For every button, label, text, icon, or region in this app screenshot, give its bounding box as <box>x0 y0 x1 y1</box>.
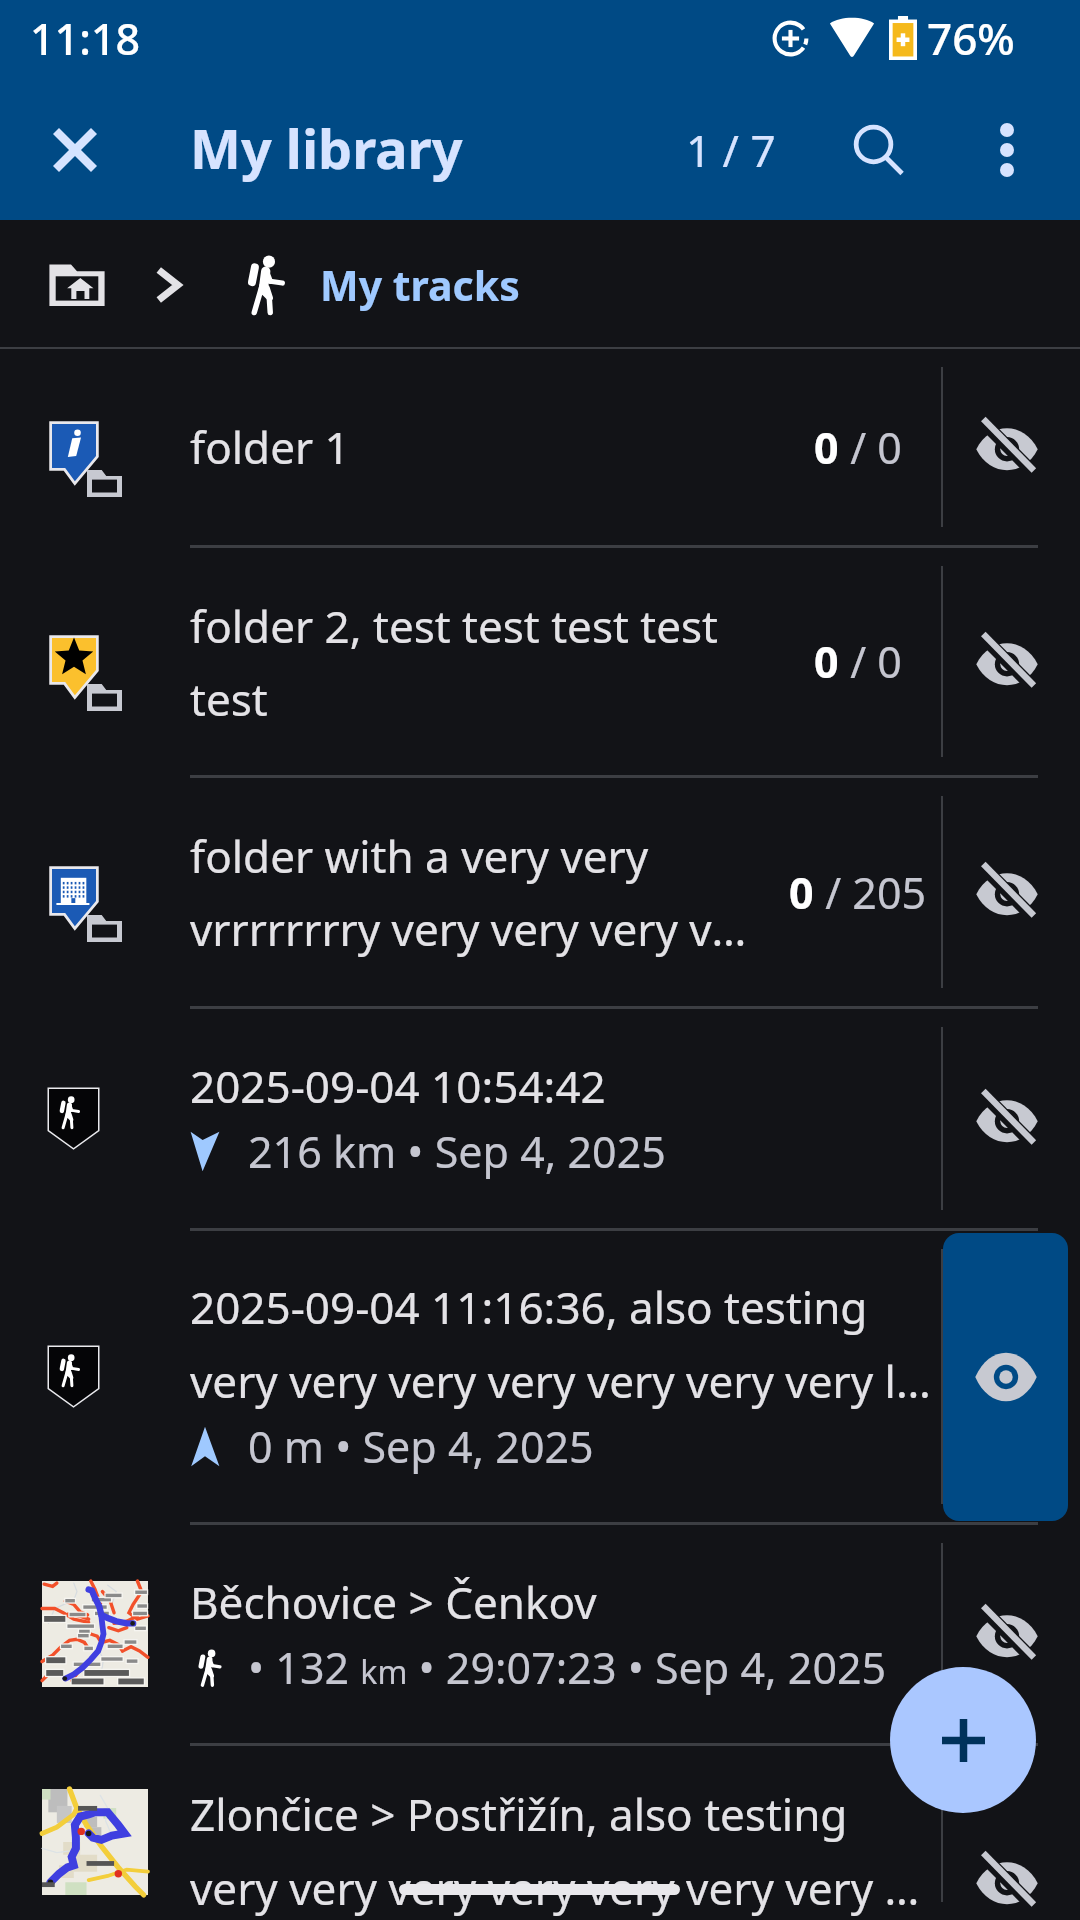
button[interactable]: More options <box>959 102 1055 198</box>
staticText: folder with a very very vrrrrrrrry very … <box>190 826 767 958</box>
staticText: 0 <box>814 418 839 477</box>
button[interactable]: Home folder <box>46 254 108 316</box>
staticText: My tracks <box>320 257 520 313</box>
button[interactable]: folder 2, test test test test test <box>0 548 1080 775</box>
button[interactable]: Show on map <box>943 548 1080 775</box>
staticText: 2025-09-04 10:54:42 <box>190 1056 606 1116</box>
button[interactable]: Show on map <box>943 349 1080 545</box>
staticText: 76% <box>927 8 1015 68</box>
button[interactable]: My tracks <box>236 253 520 317</box>
staticText: 2025-09-04 11:16:36, also testing very v… <box>190 1277 939 1411</box>
button[interactable]: folder 1 <box>0 349 1080 545</box>
button[interactable]: Close <box>27 102 123 198</box>
button[interactable]: Search <box>830 102 926 198</box>
button[interactable]: 2025-09-04 10:54:42 <box>0 1009 1080 1228</box>
staticText: Zlončice > Postřižín, also testing very … <box>190 1784 939 1918</box>
staticText: / 0 <box>839 632 902 691</box>
button[interactable]: Hide from map <box>943 1233 1068 1521</box>
button[interactable]: Show on map <box>943 1009 1080 1228</box>
staticText: folder 2, test test test test test <box>190 596 767 728</box>
staticText: My library <box>190 111 463 185</box>
button[interactable]: Běchovice > Čenkov <box>0 1525 1080 1743</box>
button[interactable]: Show on map <box>943 1525 1080 1743</box>
staticText: / 0 <box>839 418 902 477</box>
staticText: 0 <box>814 632 839 691</box>
staticText: 11:18 <box>30 9 141 68</box>
button[interactable]: Zlončice > Postřižín, also testing very … <box>0 1746 1080 1920</box>
staticText: 1 / 7 <box>686 120 776 180</box>
button[interactable]: Show on map <box>943 778 1080 1006</box>
staticText: • 132 km • 29:07:23 • Sep 4, 2025 <box>248 1638 887 1697</box>
button[interactable]: 2025-09-04 11:16:36, also testing very v… <box>0 1231 1080 1522</box>
staticText: Běchovice > Čenkov <box>190 1572 597 1632</box>
staticText: 0 m • Sep 4, 2025 <box>248 1417 594 1476</box>
button[interactable]: folder with a very very vrrrrrrrry very … <box>0 778 1080 1006</box>
staticText: 216 km • Sep 4, 2025 <box>248 1122 666 1181</box>
staticText: / 205 <box>814 863 927 922</box>
staticText: folder 1 <box>190 417 767 477</box>
staticText: 0 <box>789 863 814 922</box>
button[interactable]: Add <box>890 1667 1036 1813</box>
button[interactable]: Show on map <box>943 1746 1080 1920</box>
